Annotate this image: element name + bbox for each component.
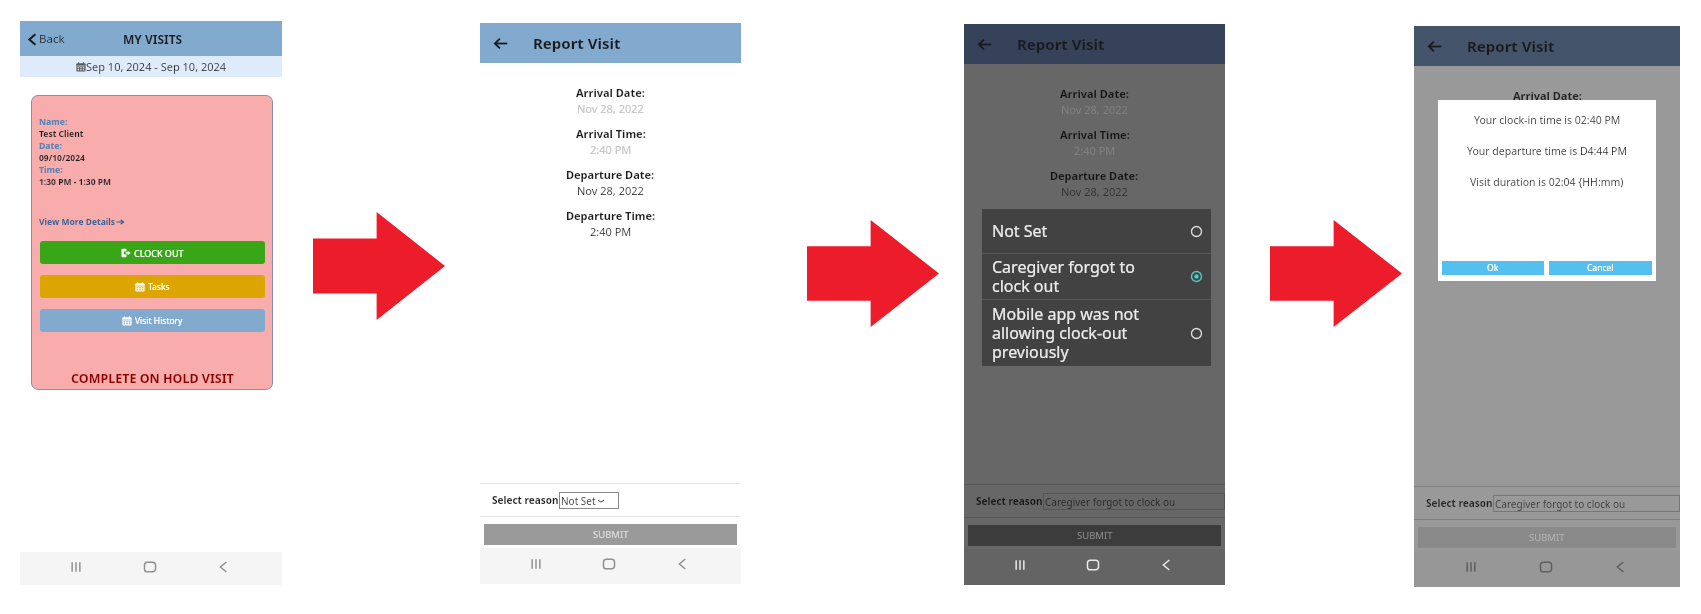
staticText: 2:40 PM [590,142,632,157]
staticText: Tasks [148,281,170,293]
staticText: COMPLETE ON HOLD VISIT [71,370,234,387]
staticText: Departure Time: [566,208,656,223]
button[interactable]: Back [1596,551,1644,587]
button[interactable]: Caregiver forgot to clock out [982,254,1211,299]
button[interactable]: Ok [1442,261,1544,275]
staticText: SUBMIT [593,528,629,541]
button[interactable]: SUBMIT [968,525,1221,546]
staticText: SUBMIT [1529,531,1565,544]
staticText: Select reason [976,494,1043,508]
button[interactable]: SUBMIT [484,524,737,545]
button[interactable]: Home [1522,551,1570,587]
staticText: Not Set [561,494,596,508]
staticText: Arrival Date: [1060,86,1129,101]
staticText: 09/10/2024 [39,152,85,164]
staticText: Caregiver forgot to clock out [992,256,1190,297]
staticText: Nov 28, 2022 [1061,102,1128,117]
button[interactable]: Back [1142,549,1190,585]
staticText: Your departure time is D4:44 PM [1467,144,1627,158]
staticText: Not Set [992,220,1190,242]
staticText: Nov 28, 2022 [577,101,644,116]
button[interactable]: Caregiver forgot to clock ou [1043,493,1225,510]
button[interactable]: Back [1423,35,1445,57]
staticText: Nov 28, 2022 [577,183,644,198]
staticText: Arrival Time: [576,126,646,141]
staticText: Nov 28, 2022 [1514,104,1581,119]
staticText: Time: [39,164,63,176]
button[interactable]: View More Details [39,214,124,230]
staticText: Nov 28, 2022 [1514,186,1581,201]
staticText: 2:40 PM [590,224,632,239]
button[interactable]: Recents [1447,551,1495,587]
button[interactable]: Visit History [40,309,265,332]
staticText: Report Visit [1467,36,1555,56]
staticText: Caregiver forgot to clock ou [1495,497,1626,511]
button[interactable]: CLOCK OUT [40,241,265,264]
button[interactable]: SUBMIT [1418,527,1676,548]
button[interactable]: Not Set [982,209,1211,253]
staticText: Back [39,31,65,47]
staticText: 2:40 PM [1074,143,1116,158]
staticText: Sep 10, 2024 - Sep 10, 2024 [86,59,227,74]
staticText: 1:30 PM - 1:30 PM [39,176,112,188]
button[interactable]: Home [585,548,633,584]
staticText: Departure Date: [566,167,655,182]
button[interactable]: Recents [996,549,1044,585]
staticText: Your clock-in time is 02:40 PM [1474,113,1621,127]
button[interactable]: Back [199,552,247,585]
staticText: Departure Date: [1050,168,1139,183]
button[interactable]: Mobile app was not allowing clock-out pr… [982,300,1211,366]
staticText: 2:40 PM [1526,145,1568,160]
staticText: Cancel [1587,262,1614,274]
staticText: View More Details [39,216,116,228]
staticText: Report Visit [1017,34,1105,54]
button[interactable]: Back [658,548,706,584]
button[interactable]: Back [489,32,511,54]
staticText: Caregiver forgot to clock ou [1045,495,1176,509]
staticText: Arrival Date: [1513,88,1582,103]
button[interactable]: Caregiver forgot to clock ou [1493,495,1680,512]
button[interactable]: Back [973,33,995,55]
staticText: Test Client [39,128,84,140]
staticText: Date: [39,140,62,152]
button[interactable]: Sep 10, 2024 - Sep 10, 2024 [20,56,282,77]
staticText: Visit duration is 02:04 {HH:mm) [1470,175,1624,189]
staticText: MY VISITS [123,31,183,47]
button[interactable]: Not Set [559,492,619,509]
button[interactable]: Home [1069,549,1117,585]
staticText: CLOCK OUT [134,247,184,259]
staticText: SUBMIT [1077,529,1113,542]
staticText: Visit History [135,315,183,327]
staticText: Arrival Date: [576,85,645,100]
staticText: Ok [1487,262,1499,274]
button[interactable]: Back [20,27,71,51]
staticText: Select reason [492,493,559,507]
button[interactable]: Cancel [1549,261,1652,275]
button[interactable]: Recents [52,552,100,585]
staticText: Departure Date: [1503,170,1592,185]
staticText: Select reason [1426,496,1493,510]
staticText: Name: [39,116,68,128]
button[interactable]: Recents [512,548,560,584]
button[interactable]: Home [126,552,174,585]
staticText: Arrival Time: [1060,127,1130,142]
staticText: Report Visit [533,33,621,53]
button[interactable]: Tasks [40,275,265,298]
staticText: Nov 28, 2022 [1061,184,1128,199]
staticText: Mobile app was not allowing clock-out pr… [992,303,1190,363]
